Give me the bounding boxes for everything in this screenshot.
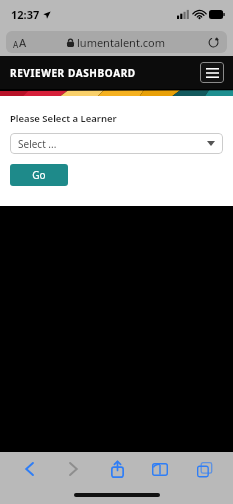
staticText: A [19, 35, 27, 50]
button[interactable]: Open menu [200, 62, 224, 83]
button[interactable]: Select ... [10, 133, 223, 154]
button[interactable]: Share [98, 454, 136, 484]
staticText: 12:37 [11, 7, 40, 22]
button[interactable]: Go [10, 164, 68, 186]
staticText: lumentalent.com [77, 35, 166, 50]
button[interactable]: Bookmarks [141, 454, 179, 484]
staticText: Select ... [18, 137, 57, 151]
button[interactable]: Back [10, 454, 48, 484]
button[interactable]: Forward [54, 454, 92, 484]
button[interactable]: Reload [207, 36, 220, 49]
staticText: REVIEWER DASHBOARD [10, 66, 136, 80]
staticText: Please Select a Learner [10, 112, 117, 125]
staticText: A [13, 39, 19, 50]
button[interactable]: Text size [13, 35, 27, 50]
button[interactable]: Text size [6, 31, 227, 53]
staticText: Go [32, 168, 46, 182]
button[interactable]: Tabs [185, 454, 223, 484]
